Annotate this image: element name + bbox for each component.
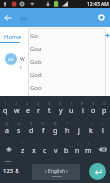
- button[interactable]: Clear search: [92, 8, 110, 27]
- staticText: 8: [81, 101, 84, 106]
- staticText: @: [5, 121, 9, 126]
- button[interactable]: 5: [44, 99, 55, 119]
- staticText: !: [22, 141, 24, 146]
- staticText: Gob: [30, 58, 42, 66]
- button[interactable]: -: [73, 119, 85, 139]
- staticText: b: [64, 146, 69, 156]
- staticText: 4: [37, 101, 40, 106]
- staticText: f: [42, 126, 45, 136]
- button[interactable]: Enter: [89, 163, 106, 180]
- button[interactable]: #: [13, 119, 25, 139]
- button[interactable]: Back: [0, 8, 16, 27]
- button[interactable]: @: [1, 119, 13, 139]
- button[interactable]: 1: [0, 99, 11, 119]
- button[interactable]: Go: [29, 29, 105, 42]
- button[interactable]: 7: [66, 99, 77, 119]
- staticText: 1: [4, 101, 7, 106]
- staticText: ?: [88, 141, 90, 146]
- staticText: i: [82, 106, 84, 116]
- button[interactable]: ;: [61, 139, 72, 159]
- button[interactable]: 8: [77, 99, 88, 119]
- staticText: m: [85, 146, 92, 156]
- staticText: k: [89, 126, 93, 136]
- button[interactable]: Backspace: [94, 139, 110, 159]
- staticText: Home: [4, 33, 22, 41]
- staticText: 3: [26, 101, 29, 106]
- staticText: t: [48, 106, 51, 116]
- staticText: E: [20, 65, 23, 70]
- staticText: 0: [103, 101, 106, 106]
- button[interactable]: Shift: [0, 139, 17, 159]
- staticText: ‹ English ›: [45, 168, 68, 175]
- staticText: d: [29, 126, 34, 136]
- staticText: (: [102, 121, 104, 126]
- button[interactable]: (: [97, 119, 109, 139]
- staticText: q: [3, 106, 8, 116]
- button[interactable]: 6: [55, 99, 66, 119]
- staticText: AN: [8, 57, 14, 62]
- staticText: &: [54, 121, 57, 126]
- button[interactable]: AN: [5, 53, 17, 65]
- button[interactable]: Gob: [29, 55, 105, 68]
- staticText: l: [102, 126, 104, 136]
- staticText: -: [78, 121, 80, 126]
- button[interactable]: ‹ English ›: [32, 164, 80, 180]
- staticText: W: [20, 56, 25, 63]
- staticText: 7: [70, 101, 73, 106]
- button[interactable]: ": [28, 139, 39, 159]
- staticText: +: [90, 121, 93, 126]
- staticText: a: [5, 126, 9, 136]
- staticText: Goa: [30, 45, 42, 53]
- button[interactable]: /: [72, 139, 83, 159]
- staticText: u: [69, 106, 74, 116]
- staticText: n: [75, 146, 80, 156]
- button[interactable]: !: [17, 139, 28, 159]
- button[interactable]: Goa: [29, 42, 105, 55]
- staticText: 2: [15, 101, 18, 106]
- staticText: ": [33, 141, 35, 146]
- button[interactable]: 123: [0, 159, 28, 182]
- button[interactable]: ?: [83, 139, 94, 159]
- button[interactable]: 4: [33, 99, 44, 119]
- button[interactable]: 9: [88, 99, 99, 119]
- staticText: /: [77, 141, 79, 146]
- staticText: go: [20, 14, 28, 22]
- staticText: %: [41, 121, 45, 126]
- staticText: Go: [30, 32, 38, 40]
- staticText: $: [30, 121, 33, 126]
- button[interactable]: 3: [22, 99, 33, 119]
- button[interactable]: 2: [11, 99, 22, 119]
- staticText: Goo: [30, 84, 42, 92]
- staticText: g: [53, 126, 58, 136]
- staticText: #: [18, 121, 21, 126]
- staticText: e: [26, 106, 30, 116]
- button[interactable]: ': [39, 139, 50, 159]
- button[interactable]: +: [85, 119, 97, 139]
- button[interactable]: Goo: [29, 81, 105, 94]
- button[interactable]: &: [49, 119, 61, 139]
- button[interactable]: :: [50, 139, 61, 159]
- staticText: 9: [92, 101, 95, 106]
- staticText: z: [21, 146, 25, 156]
- staticText: y: [59, 106, 63, 116]
- staticText: c: [43, 146, 47, 156]
- button[interactable]: 0: [99, 99, 110, 119]
- staticText: ': [44, 141, 45, 146]
- staticText: 6: [59, 101, 62, 106]
- staticText: x: [32, 146, 36, 156]
- button[interactable]: *: [61, 119, 73, 139]
- button[interactable]: %: [37, 119, 49, 139]
- staticText: o: [91, 106, 96, 116]
- staticText: 5: [48, 101, 51, 106]
- staticText: 123: [3, 167, 14, 175]
- staticText: w: [14, 106, 20, 116]
- staticText: 12:43 AM: [87, 1, 109, 8]
- button[interactable]: God: [29, 68, 105, 81]
- staticText: ;: [66, 141, 68, 146]
- staticText: s: [17, 126, 21, 136]
- staticText: p: [102, 106, 107, 116]
- staticText: v: [54, 146, 58, 156]
- button[interactable]: $: [25, 119, 37, 139]
- staticText: *: [66, 121, 69, 126]
- staticText: j: [78, 126, 80, 136]
